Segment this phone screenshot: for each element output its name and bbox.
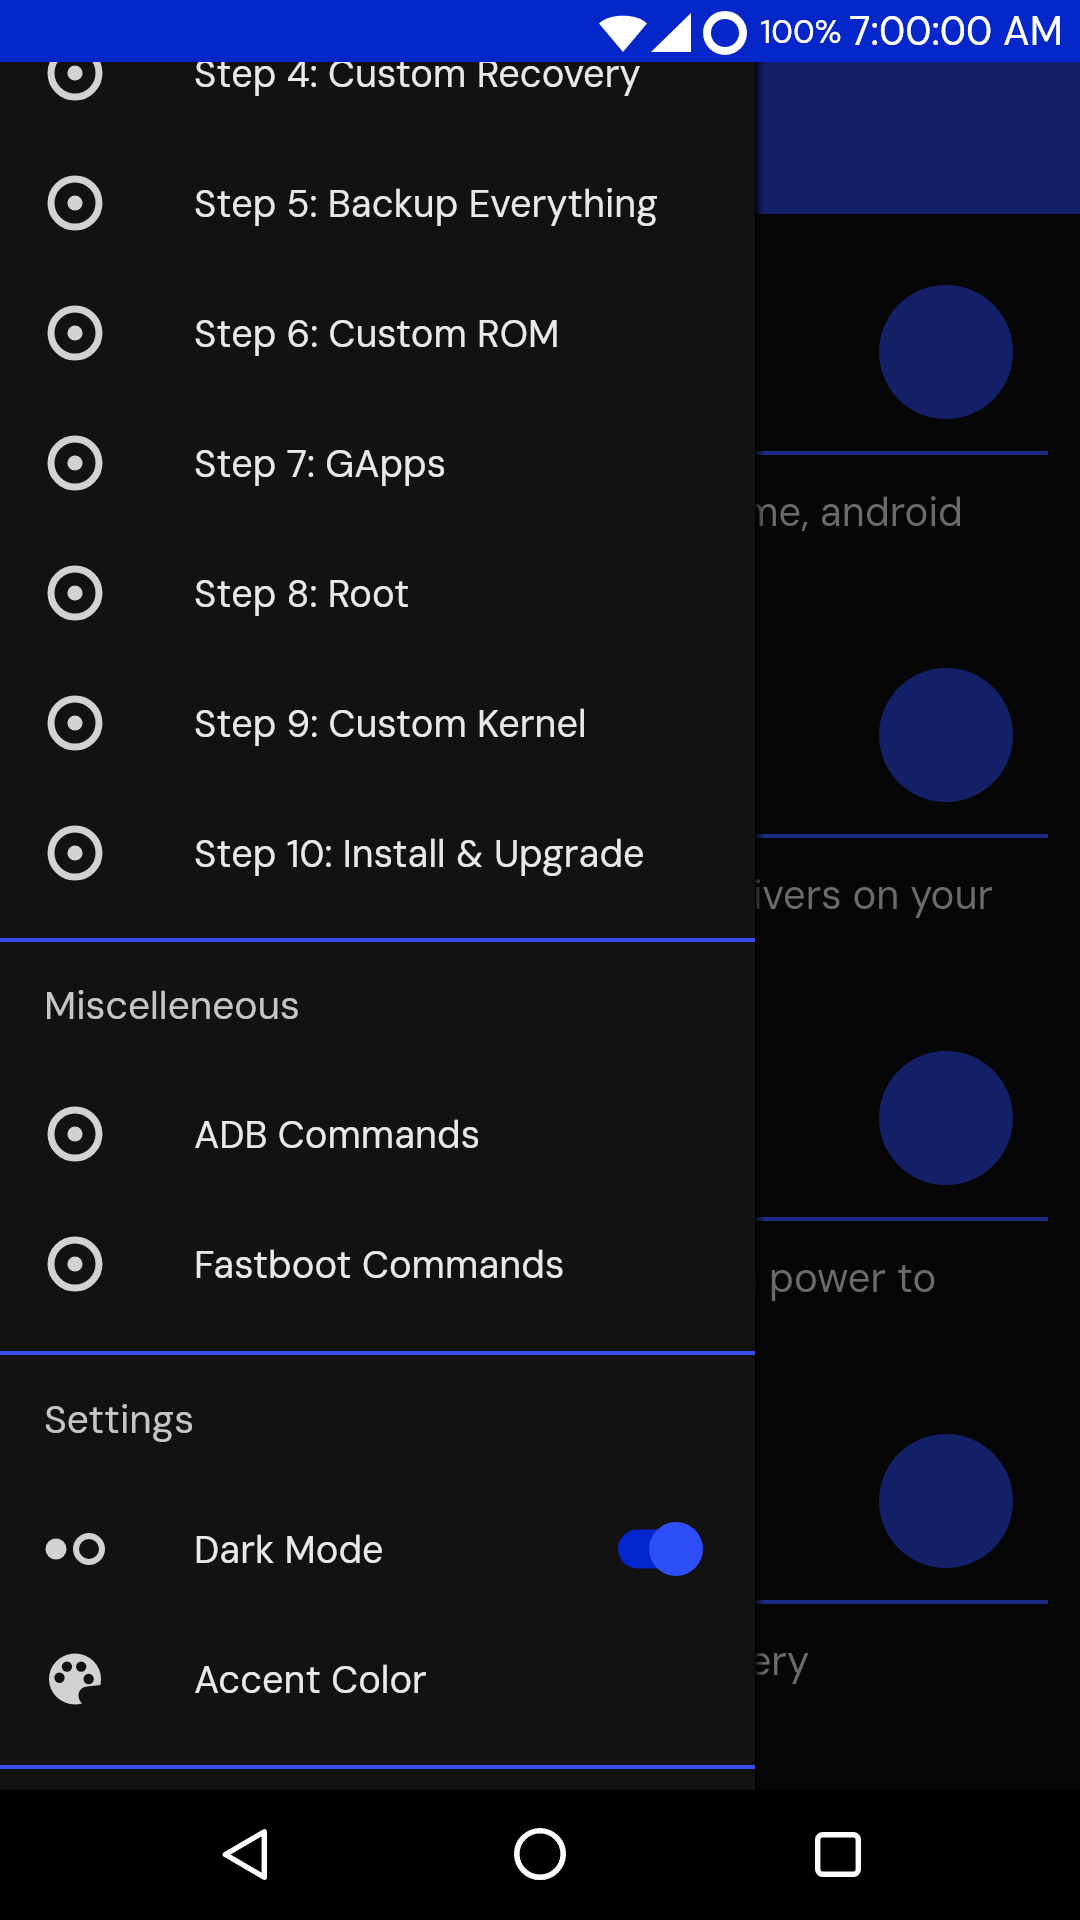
staticText: Battery (671, 1635, 810, 1687)
staticText: Button power to (632, 1252, 937, 1304)
staticText: Install drivers on your (593, 869, 994, 921)
staticText: Step 7: GApps (194, 439, 447, 488)
staticText: Step 10: Install & Upgrade (194, 829, 645, 878)
staticText: 100% (760, 10, 842, 53)
staticText: Step 6: Custom ROM (194, 309, 560, 358)
staticText: Fastboot Commands (194, 1240, 565, 1289)
button[interactable]: Back (134, 1790, 354, 1920)
staticText: Accent Color (194, 1655, 427, 1704)
staticText: ADB Commands (194, 1110, 481, 1159)
button[interactable]: Recent apps (728, 1790, 948, 1920)
staticText: Settings (44, 1394, 195, 1445)
button[interactable]: Step 8: Root (0, 528, 755, 658)
button[interactable]: ADB Commands (0, 1069, 755, 1199)
button[interactable]: Fastboot Commands (0, 1199, 755, 1329)
staticText: Step 8: Root (194, 569, 410, 618)
staticText: 7:00:00 AM (849, 5, 1063, 57)
button[interactable]: Home (430, 1790, 650, 1920)
button[interactable]: Accent Color (0, 1614, 755, 1744)
staticText: Dark Mode (194, 1525, 384, 1574)
button[interactable]: Step 6: Custom ROM (0, 268, 755, 398)
staticText: Welcome, android (628, 486, 963, 538)
button[interactable]: Step 10: Install & Upgrade (0, 788, 755, 918)
button[interactable]: Dark Mode (0, 1484, 755, 1614)
button[interactable]: Step 4: Custom Recovery (0, 8, 755, 138)
staticText: Step 9: Custom Kernel (194, 699, 587, 748)
button[interactable]: Step 5: Backup Everything (0, 138, 755, 268)
staticText: Step 5: Backup Everything (194, 179, 658, 228)
button[interactable]: Step 9: Custom Kernel (0, 658, 755, 788)
button[interactable]: Step 7: GApps (0, 398, 755, 528)
staticText: Step 4: Custom Recovery (194, 49, 641, 98)
staticText: Miscelleneous (44, 980, 300, 1031)
other: Wi-Fi (599, 13, 647, 52)
